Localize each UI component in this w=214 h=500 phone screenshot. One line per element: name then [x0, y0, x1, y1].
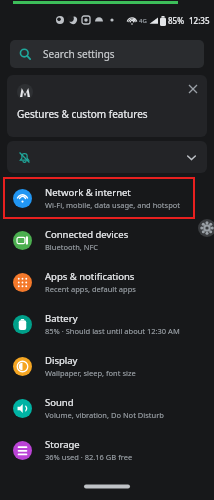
- button[interactable]: Gestures & custom features: [7, 75, 207, 137]
- staticText: 85% · Should last until about 12:30 AM: [45, 326, 180, 336]
- staticText: Wallpaper, sleep, font size: [45, 368, 136, 378]
- staticText: Apps & notifications: [45, 270, 135, 283]
- staticText: Recent apps, default apps: [45, 284, 136, 294]
- staticText: 12:35: [189, 15, 210, 26]
- staticText: 36% used · 82.16 GB free: [45, 452, 133, 462]
- staticText: Network & internet: [45, 186, 131, 199]
- staticText: Search settings: [43, 47, 115, 61]
- staticText: Connected devices: [45, 228, 129, 241]
- button[interactable]: Connected devices: [0, 219, 214, 261]
- staticText: Wi-Fi, mobile, data usage, and hotspot: [45, 200, 180, 210]
- staticText: Bluetooth, NFC: [45, 242, 99, 252]
- staticText: Volume, vibration, Do Not Disturb: [45, 410, 164, 420]
- button[interactable]: [7, 141, 207, 173]
- button[interactable]: Display: [0, 345, 214, 387]
- staticText: Gestures & custom features: [17, 107, 148, 121]
- staticText: 85%: [168, 15, 184, 26]
- button[interactable]: Storage: [0, 429, 214, 471]
- button[interactable]: Search settings: [10, 40, 204, 68]
- staticText: Sound: [45, 396, 74, 409]
- button[interactable]: Network & internet: [3, 177, 195, 219]
- staticText: 4G: [139, 17, 147, 25]
- button[interactable]: Apps & notifications: [0, 261, 214, 303]
- button[interactable]: Dismiss: [185, 81, 201, 97]
- button[interactable]: Settings shortcut: [198, 219, 214, 237]
- button[interactable]: Sound: [0, 387, 214, 429]
- button[interactable]: Battery: [0, 303, 214, 345]
- staticText: Battery: [45, 312, 78, 325]
- staticText: Storage: [45, 438, 80, 451]
- staticText: Display: [45, 354, 78, 367]
